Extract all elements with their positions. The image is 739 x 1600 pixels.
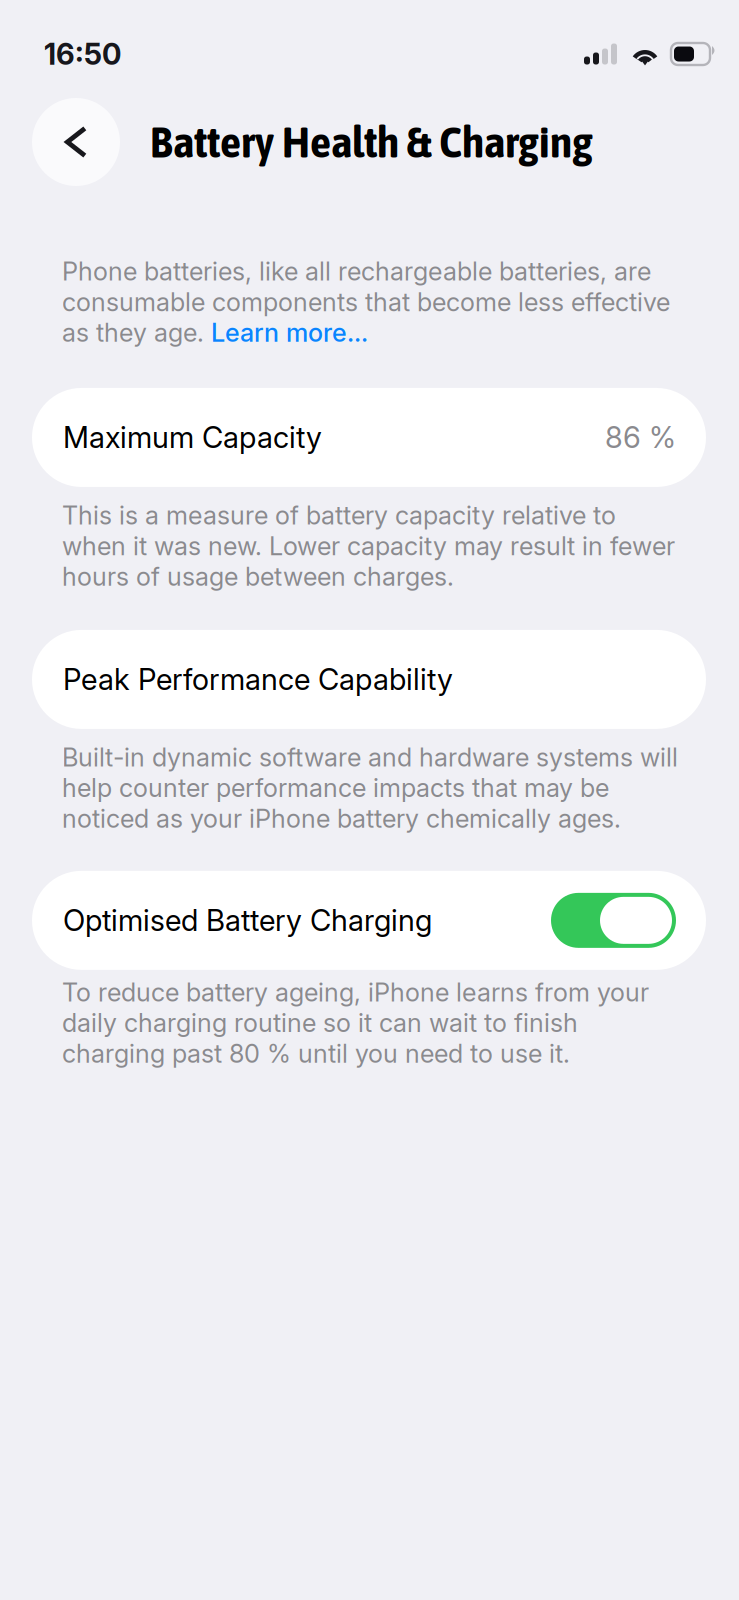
staticText: Phone batteries, like all rechargeable b… [62,256,670,348]
staticText: 16:50 [44,36,121,72]
staticText: To reduce battery ageing, iPhone learns … [62,977,649,1069]
button[interactable]: Peak Performance Capability [0,630,739,729]
staticText: Optimised Battery Charging [63,903,432,938]
staticText: Battery Health & Charging [150,118,593,166]
staticText: Peak Performance Capability [63,662,453,697]
staticText: This is a measure of battery capacity re… [62,500,675,592]
staticText: Built-in dynamic software and hardware s… [62,742,678,834]
staticText: 86 % [605,420,676,455]
button[interactable]: Back [32,98,120,186]
staticText: Maximum Capacity [63,420,322,455]
